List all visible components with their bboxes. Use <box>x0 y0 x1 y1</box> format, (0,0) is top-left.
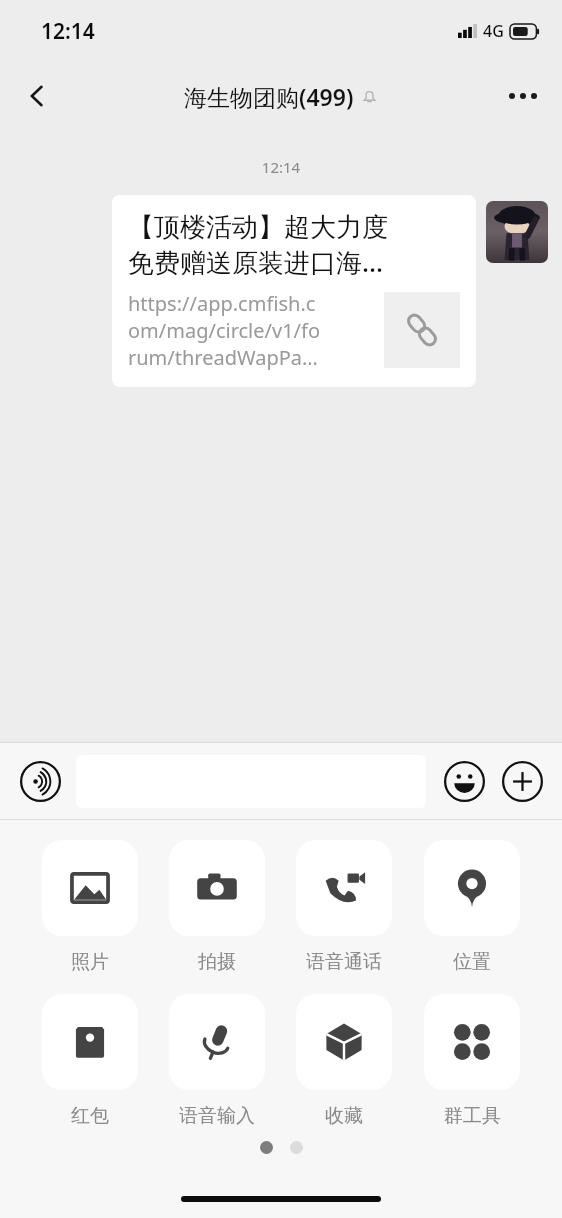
staticText: 海生物团购(499) <box>184 81 354 112</box>
staticText: om/mag/circle/v1/fo <box>128 317 321 344</box>
staticText: 12:14 <box>0 157 562 177</box>
button[interactable]: 群工具 <box>408 994 536 1128</box>
button[interactable]: Back <box>12 70 64 122</box>
staticText: https://app.cmfish.c <box>128 290 316 317</box>
staticText: 4G <box>483 20 504 42</box>
staticText: 照片 <box>71 950 109 974</box>
staticText: 收藏 <box>325 1104 363 1128</box>
button[interactable]: 位置 <box>408 840 536 974</box>
button[interactable]: Voice message <box>14 755 66 807</box>
staticText: 位置 <box>453 950 491 974</box>
staticText: 红包 <box>71 1104 109 1128</box>
staticText: 【顶楼活动】超大力度 <box>128 211 388 244</box>
staticText: 语音输入 <box>179 1104 255 1128</box>
staticText: 群工具 <box>444 1104 501 1128</box>
button[interactable]: More options <box>496 69 550 123</box>
button[interactable]: 收藏 <box>280 994 408 1128</box>
staticText: 免费赠送原装进口海… <box>128 244 384 280</box>
staticText: 语音通话 <box>306 950 382 974</box>
button[interactable]: 红包 <box>26 994 153 1128</box>
staticText: 拍摄 <box>198 950 236 974</box>
button[interactable]: 照片 <box>26 840 153 974</box>
button[interactable]: 语音通话 <box>280 840 408 974</box>
button[interactable]: 语音输入 <box>153 994 280 1128</box>
staticText: 12:14 <box>41 17 95 46</box>
button[interactable]: Emoji <box>438 755 490 807</box>
button[interactable]: Avatar <box>486 201 548 263</box>
button[interactable]: 【顶楼活动】超大力度 <box>112 195 476 387</box>
button[interactable]: 拍摄 <box>153 840 280 974</box>
button[interactable]: More functions <box>496 755 548 807</box>
staticText: rum/threadWapPa… <box>128 344 318 371</box>
